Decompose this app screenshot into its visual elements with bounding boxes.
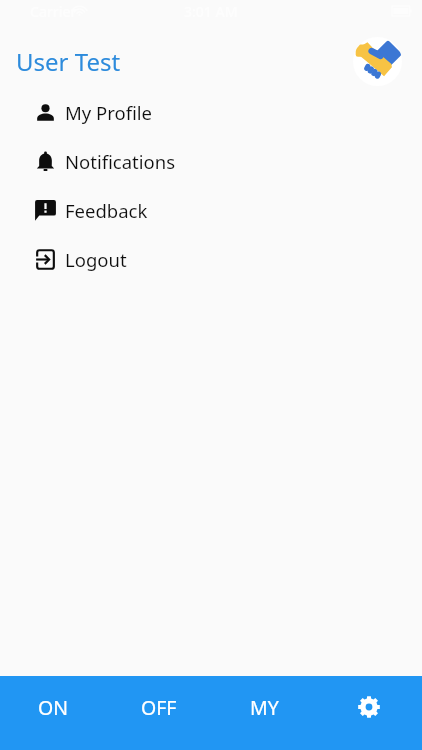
staticText: Logout (65, 247, 127, 272)
staticText: My Profile (65, 100, 153, 125)
button[interactable]: Feedback (0, 186, 422, 235)
staticText: ON (38, 694, 69, 721)
staticText: Notifications (65, 149, 176, 174)
staticText: User Test (16, 45, 121, 78)
staticText: Feedback (65, 198, 148, 223)
staticText: MY (250, 694, 279, 721)
staticText: OFF (141, 694, 177, 721)
button[interactable]: Settings (316, 676, 422, 750)
button[interactable]: App logo (353, 37, 402, 86)
button[interactable]: Notifications (0, 137, 422, 186)
button[interactable]: MY (210, 676, 316, 750)
button[interactable]: ON (0, 676, 105, 750)
button[interactable]: Logout (0, 235, 422, 284)
button[interactable]: OFF (105, 676, 210, 750)
button[interactable]: My Profile (0, 88, 422, 137)
